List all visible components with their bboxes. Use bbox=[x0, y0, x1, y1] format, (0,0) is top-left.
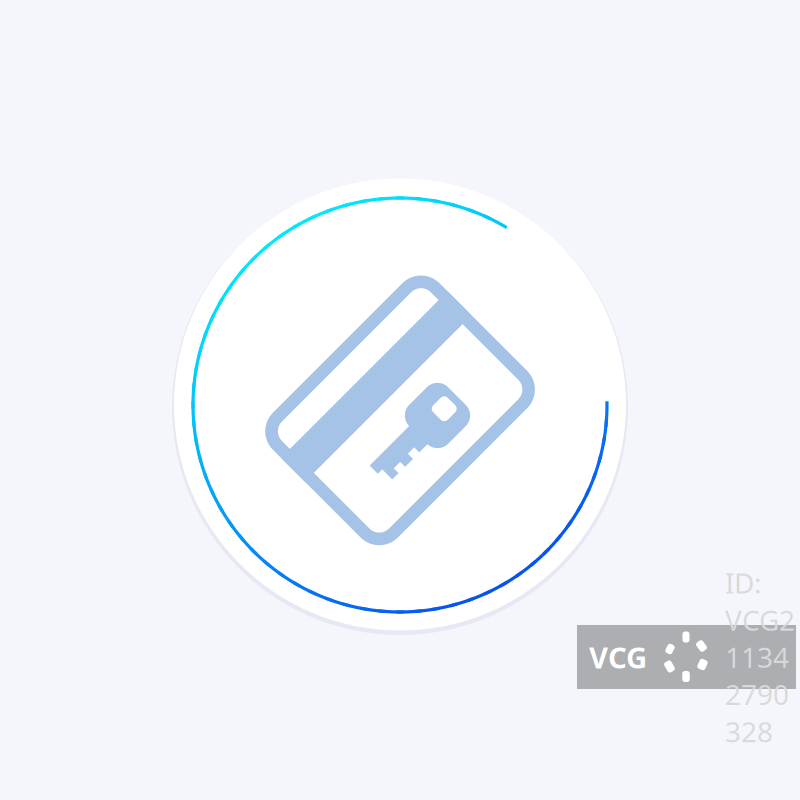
staticText: ID: VCG211342790328 bbox=[725, 564, 795, 750]
staticText: VCG bbox=[589, 637, 647, 676]
